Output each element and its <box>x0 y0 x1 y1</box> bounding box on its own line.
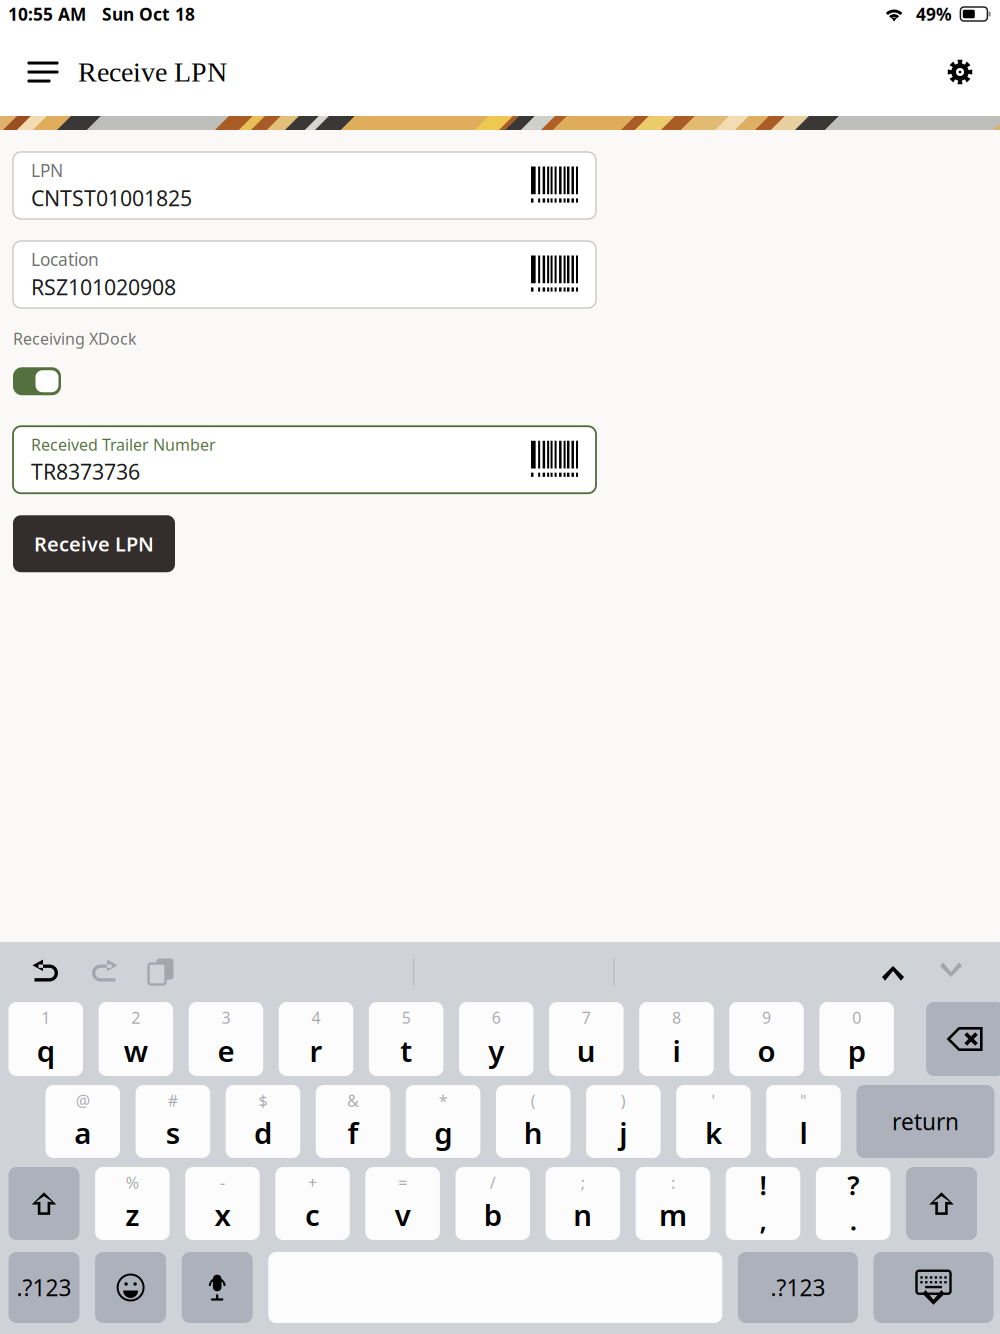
staticText: . <box>850 1202 857 1238</box>
staticText: q <box>37 1031 55 1070</box>
button[interactable]: Next field <box>922 943 980 1001</box>
staticText: + <box>308 1172 317 1193</box>
button[interactable]: .?123 <box>8 1252 79 1323</box>
button[interactable]: .?123 <box>738 1252 858 1323</box>
staticText: p <box>848 1031 866 1070</box>
button[interactable]: ? <box>816 1167 890 1240</box>
staticText: 10:55 AM <box>8 2 86 25</box>
button[interactable]: Redo <box>75 943 133 1001</box>
button[interactable]: Delete <box>926 1002 1000 1076</box>
button[interactable]: ( <box>496 1085 570 1158</box>
staticText: ; <box>581 1172 585 1193</box>
staticText: r <box>309 1031 322 1070</box>
staticText: .?123 <box>770 1272 825 1302</box>
staticText: 7 <box>582 1007 591 1028</box>
button[interactable]: Emoji <box>95 1252 166 1323</box>
button[interactable]: = <box>365 1167 440 1240</box>
staticText: ' <box>711 1090 715 1111</box>
button[interactable]: Dictation <box>182 1252 253 1323</box>
staticText: i <box>672 1031 680 1070</box>
staticText: ( <box>531 1090 536 1111</box>
button[interactable]: Previous field <box>864 943 922 1001</box>
staticText: t <box>400 1031 412 1070</box>
staticText: .?123 <box>16 1272 71 1302</box>
button[interactable]: 2 <box>99 1002 173 1076</box>
staticText: h <box>524 1113 543 1152</box>
staticText: return <box>892 1106 959 1136</box>
staticText: $ <box>258 1090 267 1111</box>
staticText: k <box>705 1113 722 1152</box>
button[interactable]: Received Trailer Number <box>13 426 596 493</box>
staticText: l <box>800 1113 808 1152</box>
button[interactable]: ) <box>586 1085 661 1158</box>
staticText: Sun Oct 18 <box>102 2 195 25</box>
staticText: : <box>671 1172 675 1193</box>
button[interactable]: 7 <box>549 1002 624 1076</box>
button[interactable]: Shift <box>906 1167 977 1240</box>
button[interactable]: Shift <box>8 1167 79 1240</box>
staticText: ! <box>760 1167 767 1202</box>
button[interactable]: 6 <box>459 1002 533 1076</box>
button[interactable]: 5 <box>369 1002 443 1076</box>
staticText: & <box>347 1090 359 1111</box>
staticText: x <box>214 1195 230 1234</box>
staticText: * <box>439 1090 448 1111</box>
button[interactable]: % <box>95 1167 170 1240</box>
button[interactable]: return <box>856 1085 994 1158</box>
staticText: w <box>124 1031 148 1070</box>
staticText: v <box>395 1195 411 1234</box>
button[interactable]: Menu <box>21 50 65 94</box>
staticText: o <box>758 1031 776 1070</box>
button[interactable]: $ <box>226 1085 300 1158</box>
button[interactable]: @ <box>45 1085 120 1158</box>
staticText: u <box>577 1031 596 1070</box>
staticText: a <box>74 1113 91 1152</box>
staticText: 5 <box>402 1007 411 1028</box>
button[interactable]: ; <box>546 1167 620 1240</box>
button[interactable]: - <box>185 1167 260 1240</box>
staticText: m <box>659 1195 687 1234</box>
button[interactable]: & <box>316 1085 390 1158</box>
staticText: 0 <box>852 1007 861 1028</box>
button[interactable]: 9 <box>729 1002 804 1076</box>
button[interactable]: Location <box>13 241 596 308</box>
staticText: , <box>760 1202 767 1238</box>
button[interactable]: " <box>766 1085 841 1158</box>
staticText: 3 <box>221 1007 230 1028</box>
staticText: j <box>619 1113 627 1152</box>
button[interactable]: 1 <box>8 1002 83 1076</box>
staticText: g <box>434 1113 452 1152</box>
button[interactable]: 0 <box>819 1002 894 1076</box>
staticText: Received Trailer Number <box>31 434 216 455</box>
staticText: - <box>220 1172 225 1193</box>
staticText: " <box>800 1090 807 1111</box>
button[interactable]: Settings <box>938 50 982 94</box>
staticText: z <box>125 1195 139 1234</box>
button[interactable]: Paste <box>133 943 191 1001</box>
button[interactable]: 4 <box>279 1002 353 1076</box>
button[interactable]: ' <box>676 1085 751 1158</box>
button[interactable]: LPN <box>13 152 596 219</box>
staticText: RSZ101020908 <box>31 273 176 301</box>
staticText: TR8373736 <box>31 457 140 485</box>
staticText: b <box>484 1195 502 1234</box>
button[interactable]: + <box>275 1167 350 1240</box>
button[interactable]: 3 <box>189 1002 263 1076</box>
staticText: 6 <box>492 1007 501 1028</box>
button[interactable]: Undo <box>17 943 75 1001</box>
staticText: s <box>166 1113 180 1152</box>
button[interactable]: / <box>455 1167 530 1240</box>
button[interactable]: Hide keyboard <box>873 1252 993 1323</box>
button[interactable]: # <box>136 1085 210 1158</box>
staticText: % <box>126 1172 139 1193</box>
button[interactable]: : <box>636 1167 710 1240</box>
button[interactable]: Receive LPN <box>13 515 175 572</box>
button[interactable]: Receiving XDock <box>13 367 61 395</box>
staticText: Receive LPN <box>34 530 154 557</box>
staticText: Receiving XDock <box>13 328 137 349</box>
button[interactable]: 8 <box>639 1002 714 1076</box>
button[interactable]: ! <box>726 1167 800 1240</box>
button[interactable]: * <box>406 1085 480 1158</box>
staticText: n <box>573 1195 592 1234</box>
